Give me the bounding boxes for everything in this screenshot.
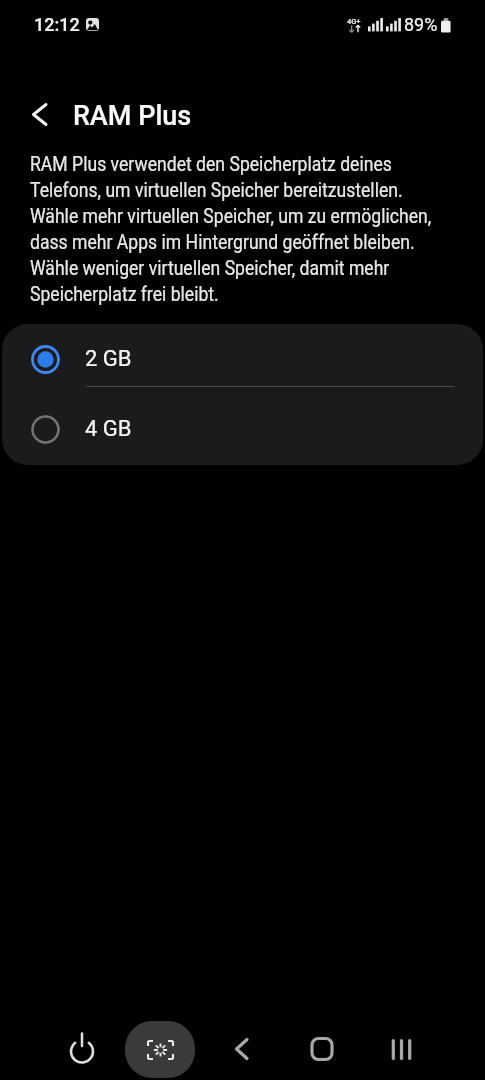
button[interactable] <box>18 92 62 136</box>
staticText: 2 GB <box>85 346 132 372</box>
button[interactable] <box>300 1027 344 1071</box>
staticText: 4 GB <box>85 416 132 442</box>
button[interactable]: 4 GB <box>2 387 483 465</box>
staticText: RAM Plus <box>73 100 192 132</box>
button[interactable] <box>380 1027 424 1071</box>
button[interactable] <box>60 1029 104 1073</box>
button[interactable] <box>220 1027 264 1071</box>
staticText: 4G+ <box>347 17 361 26</box>
staticText: 89% <box>404 14 438 35</box>
staticText: Speicherplatz frei bleibt. <box>30 282 219 305</box>
staticText: dass mehr Apps im Hintergrund geöffnet b… <box>30 230 415 253</box>
staticText: Wähle mehr virtuellen Speicher, um zu er… <box>30 204 431 227</box>
staticText: 12:12 <box>34 14 80 35</box>
button[interactable]: 2 GB <box>2 324 483 386</box>
staticText: Wähle weniger virtuellen Speicher, damit… <box>30 256 390 279</box>
button[interactable] <box>125 1021 195 1078</box>
staticText: RAM Plus verwendet den Speicherplatz dei… <box>30 152 393 175</box>
staticText: Telefons, um virtuellen Speicher bereitz… <box>30 178 403 201</box>
